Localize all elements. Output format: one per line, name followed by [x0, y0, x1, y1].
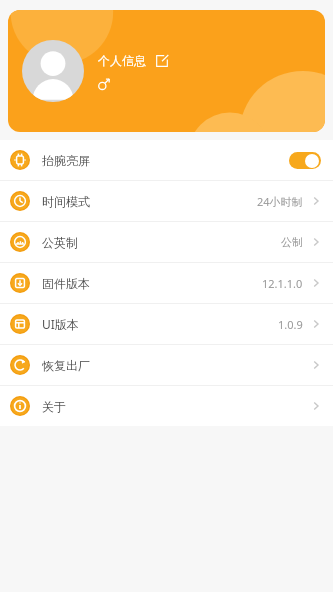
staticText: 关于 [42, 399, 66, 414]
staticText: 1.0.9 [278, 317, 303, 332]
staticText: 公制 [281, 235, 303, 249]
staticText: 固件版本 [42, 276, 90, 291]
staticText: 抬腕亮屏 [42, 153, 90, 168]
staticText: 时间模式 [42, 194, 90, 209]
staticText: UI版本 [42, 316, 79, 332]
button[interactable]: 个人信息 [8, 10, 325, 132]
staticText: 12.1.1.0 [262, 276, 303, 291]
staticText: 个人信息 [98, 53, 146, 68]
button[interactable]: UI版本 [0, 304, 333, 344]
button[interactable]: 时间模式 [0, 181, 333, 221]
staticText: 公英制 [42, 235, 78, 250]
button[interactable]: 抬腕亮屏开关 [289, 152, 321, 169]
button[interactable]: 公英制 [0, 222, 333, 262]
button[interactable]: 编辑个人信息 [155, 54, 169, 68]
button[interactable]: 固件版本 [0, 263, 333, 303]
button[interactable]: 抬腕亮屏 [0, 140, 333, 180]
button[interactable]: 关于 [0, 386, 333, 426]
staticText: 24小时制 [257, 194, 303, 209]
button[interactable]: 恢复出厂 [0, 345, 333, 385]
staticText: 恢复出厂 [42, 358, 90, 373]
